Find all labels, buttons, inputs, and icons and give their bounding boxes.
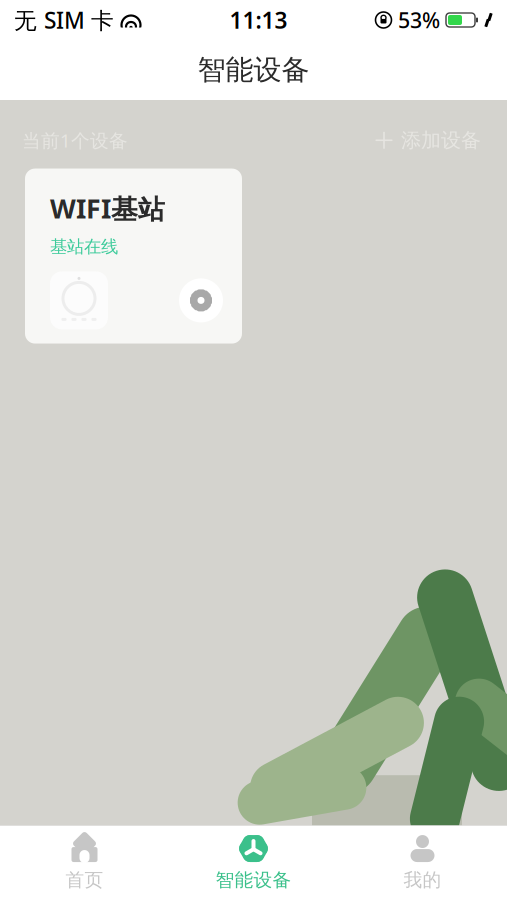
staticText: 首页	[65, 868, 103, 891]
button[interactable]: 首页	[0, 826, 169, 900]
staticText: 智能设备	[197, 53, 309, 87]
button[interactable]: 设备设置	[178, 277, 224, 323]
staticText: 无 SIM 卡	[14, 5, 114, 35]
button[interactable]: 我的	[338, 826, 507, 900]
button[interactable]: 智能设备	[169, 826, 338, 900]
staticText: 11:13	[229, 5, 287, 35]
staticText: 当前1个设备	[22, 128, 128, 153]
staticText: WIFI基站	[50, 191, 165, 226]
button[interactable]: WIFI基站	[25, 169, 242, 344]
staticText: 基站在线	[50, 236, 118, 257]
button[interactable]: 添加设备	[371, 122, 485, 159]
staticText: 我的	[403, 868, 441, 891]
staticText: 智能设备	[215, 868, 291, 891]
staticText: 添加设备	[401, 128, 481, 153]
staticText: 53%	[398, 6, 440, 34]
